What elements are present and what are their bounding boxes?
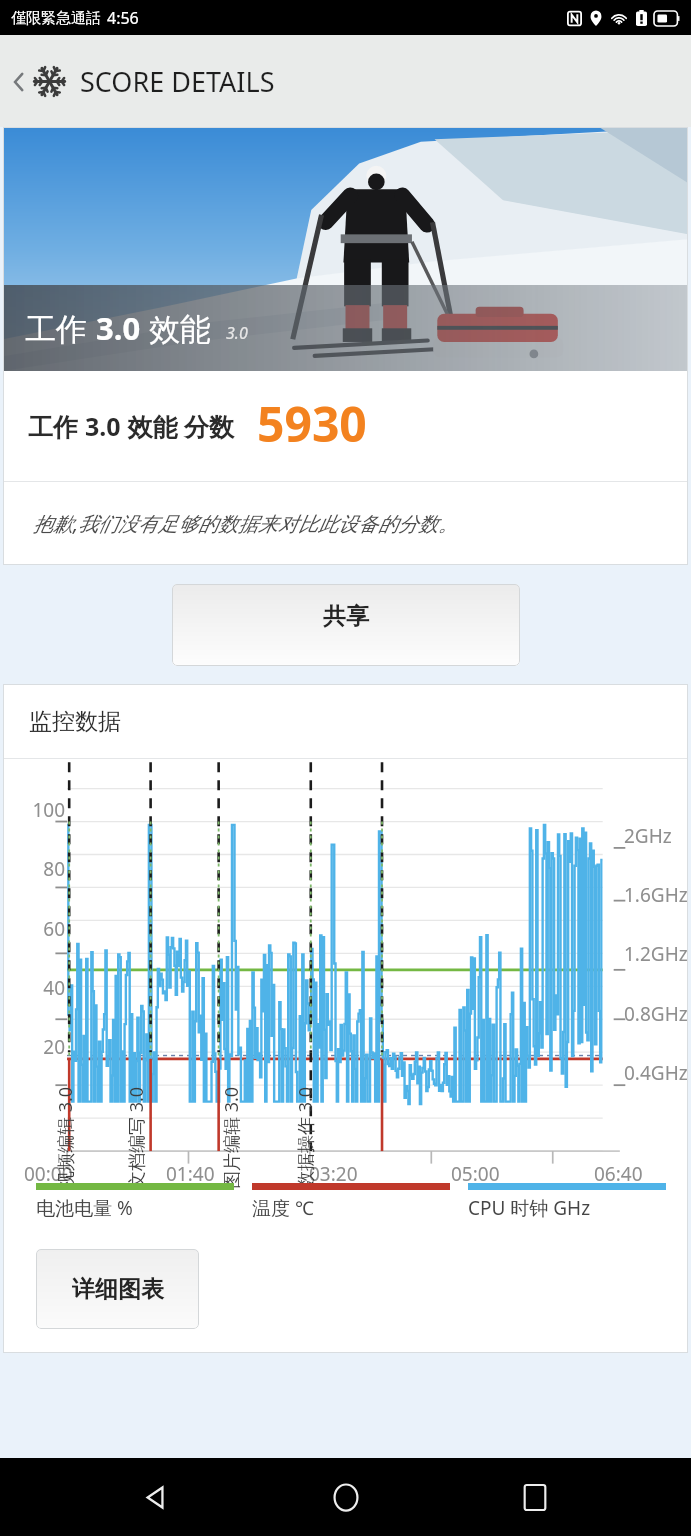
button[interactable]: 共享	[172, 584, 520, 666]
staticText: 监控数据	[29, 707, 121, 736]
staticText: 03:20	[309, 1161, 358, 1187]
staticText: 详细图表	[72, 1275, 164, 1304]
staticText: 0.8GHz	[624, 1001, 688, 1027]
staticText: 60	[21, 916, 65, 942]
staticText: 0.4GHz	[624, 1060, 688, 1086]
button[interactable]: Back	[6, 57, 280, 106]
staticText: 40	[21, 975, 65, 1001]
staticText: 僅限緊急通話	[11, 9, 101, 28]
staticText: 20	[21, 1034, 65, 1060]
button[interactable]: Back	[123, 1464, 189, 1530]
staticText: 文档编写 3.0	[124, 1086, 149, 1189]
other: Back	[11, 67, 26, 97]
staticText: 4:56	[107, 7, 139, 29]
button[interactable]: 详细图表	[36, 1249, 199, 1329]
staticText: 抱歉,我们没有足够的数据来对比此设备的分数。	[33, 510, 459, 537]
staticText: CPU 时钟 GHz	[468, 1195, 591, 1221]
staticText: SCORE DETAILS	[80, 63, 275, 100]
staticText: 效能	[141, 307, 212, 349]
staticText: 共享	[323, 602, 369, 631]
staticText: 00:00	[24, 1161, 73, 1187]
staticText: 温度 ℃	[252, 1195, 314, 1221]
staticText: 图片编辑 3.0	[219, 1086, 244, 1189]
button[interactable]: Recent apps	[502, 1464, 568, 1530]
staticText: 效能 分数	[121, 409, 235, 443]
staticText: 3.0	[226, 322, 248, 344]
staticText: 3.0	[85, 409, 121, 443]
staticText: 100	[21, 797, 65, 823]
staticText: 工作	[25, 307, 96, 349]
staticText: 数据操作 3.0	[293, 1086, 318, 1189]
staticText: 01:40	[166, 1161, 215, 1187]
staticText: 视频编辑 3.0	[53, 1086, 78, 1189]
button[interactable]: Home	[313, 1464, 379, 1530]
staticText: 2GHz	[624, 823, 672, 849]
staticText: 3.0	[96, 307, 141, 349]
staticText: 5930	[257, 391, 367, 456]
staticText: 06:40	[594, 1161, 643, 1187]
staticText: 电池电量 %	[36, 1195, 133, 1221]
staticText: 05:00	[451, 1161, 500, 1187]
staticText: 1.2GHz	[624, 941, 688, 967]
staticText: 工作	[28, 409, 85, 443]
staticText: 80	[21, 856, 65, 882]
staticText: 1.6GHz	[624, 882, 688, 908]
